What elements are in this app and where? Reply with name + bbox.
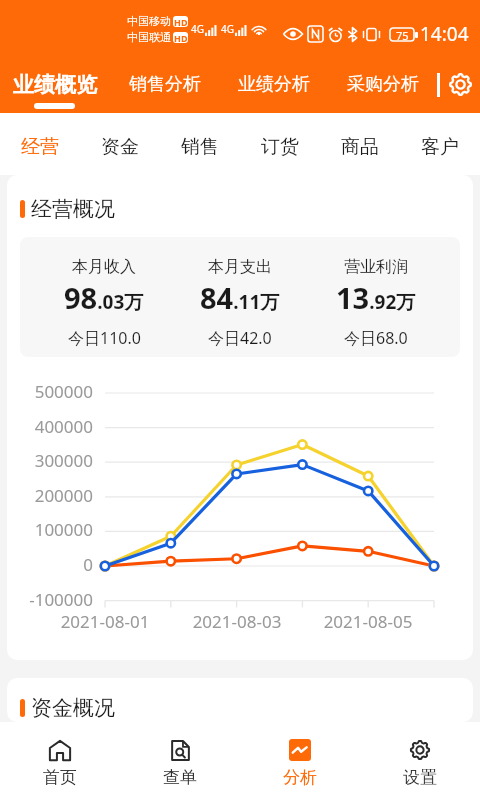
staticText: 14:04 [420,21,469,47]
staticText: 中国移动 [127,14,171,28]
button[interactable]: 经营 [0,113,80,175]
staticText: 本月收入 [72,257,136,277]
button[interactable]: 订货 [240,113,320,175]
staticText: 资金概况 [31,695,115,721]
staticText: 中国联通 [127,30,171,44]
staticText: 今日110.0 [68,327,141,349]
staticText: 200000 [8,484,93,504]
staticText: 98.03万 [64,278,144,317]
staticText: 订货 [261,135,299,159]
staticText: 查单 [163,767,197,788]
staticText: 商品 [341,135,379,159]
staticText: 100000 [8,518,93,538]
button[interactable]: 采购分析 [328,56,437,113]
staticText: 今日68.0 [344,327,408,349]
staticText: 75 [396,28,409,41]
staticText: 首页 [43,767,77,788]
staticText: 本月支出 [208,257,272,277]
staticText: 0 [8,553,93,573]
staticText: 资金 [101,135,139,159]
staticText: 经营概况 [31,196,115,222]
button[interactable]: Settings [440,56,480,113]
button[interactable]: 销售分析 [110,56,219,113]
staticText: 分析 [283,767,317,788]
staticText: 13.92万 [336,278,416,317]
button[interactable]: 商品 [320,113,400,175]
button[interactable]: 分析 [240,722,360,800]
staticText: HD [174,16,188,27]
button[interactable]: 资金 [80,113,160,175]
staticText: 2021-08-05 [318,610,418,632]
staticText: 采购分析 [347,73,419,96]
staticText: 业绩分析 [238,73,310,96]
button[interactable]: 首页 [0,722,120,800]
staticText: 设置 [403,767,437,788]
staticText: HD [174,32,188,43]
staticText: 销售分析 [129,73,201,96]
staticText: 今日42.0 [208,327,272,349]
staticText: 84.11万 [200,278,280,317]
button[interactable]: 销售 [160,113,240,175]
staticText: 客户 [421,135,459,159]
staticText: 2021-08-01 [55,610,155,632]
button[interactable]: 业绩概览 [0,56,110,113]
staticText: 2021-08-03 [187,610,287,632]
button[interactable]: 客户 [400,113,480,175]
button[interactable]: 查单 [120,722,240,800]
staticText: -100000 [8,588,93,608]
staticText: 销售 [181,135,219,159]
staticText: 营业利润 [344,257,408,277]
staticText: 4G [221,22,234,36]
staticText: 4G [191,22,204,36]
staticText: 经营 [21,135,59,159]
staticText: 业绩概览 [13,72,97,98]
button[interactable]: 业绩分析 [219,56,328,113]
staticText: 400000 [8,415,93,435]
staticText: 500000 [8,380,93,400]
button[interactable]: 设置 [360,722,480,800]
staticText: 300000 [8,449,93,469]
